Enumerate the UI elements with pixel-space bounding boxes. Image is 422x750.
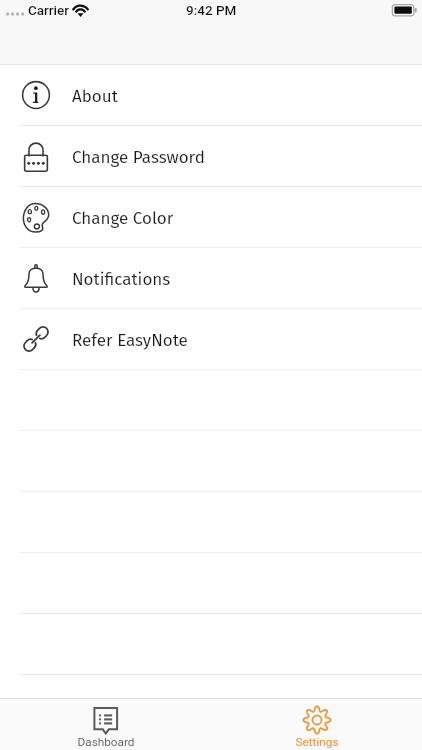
button[interactable]: About [0,65,422,126]
button[interactable]: Settings [211,699,422,750]
staticText: Dashboard [77,735,135,749]
button[interactable]: Notifications [0,248,422,309]
staticText: Refer EasyNote [72,330,188,350]
staticText: Notifications [72,269,171,289]
button[interactable]: Dashboard [0,699,211,750]
staticText: Carrier [28,2,70,18]
staticText: About [72,86,118,106]
staticText: Settings [295,735,339,749]
button[interactable]: Refer EasyNote [0,309,422,370]
button[interactable]: Change Color [0,187,422,248]
staticText: Change Password [72,147,205,167]
staticText: 9:42 PM [186,2,237,18]
staticText: Change Color [72,208,174,228]
button[interactable]: Change Password [0,126,422,187]
